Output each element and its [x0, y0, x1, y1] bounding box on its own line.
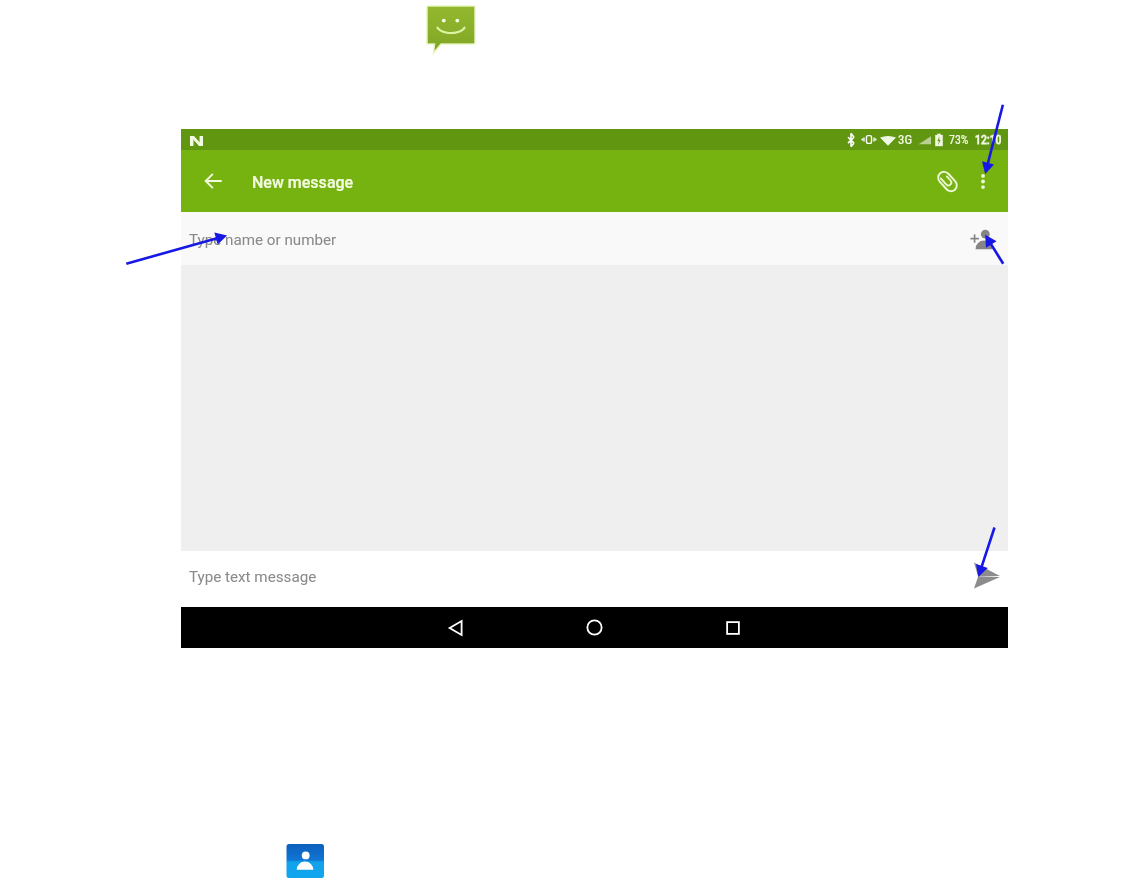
button[interactable]: Attach — [925, 159, 969, 203]
staticText: Type text message — [189, 568, 317, 586]
button[interactable]: Type name or number — [181, 212, 1008, 265]
button[interactable]: Add recipient — [960, 220, 1004, 264]
staticText: 73% — [949, 133, 969, 147]
button[interactable]: Back — [433, 607, 479, 648]
button[interactable]: Recent apps — [710, 607, 756, 648]
button[interactable]: Home — [571, 607, 617, 648]
button[interactable]: Back — [191, 159, 235, 203]
staticText: 3G — [898, 132, 913, 147]
staticText: New message — [252, 173, 354, 192]
button[interactable]: More options — [963, 161, 1003, 201]
staticText: 12:10 — [975, 133, 1002, 147]
staticText: Type name or number — [189, 231, 337, 249]
button[interactable]: Messaging app icon — [425, 4, 477, 56]
button[interactable]: Send — [964, 552, 1008, 596]
button[interactable]: Contacts app icon — [285, 842, 326, 880]
